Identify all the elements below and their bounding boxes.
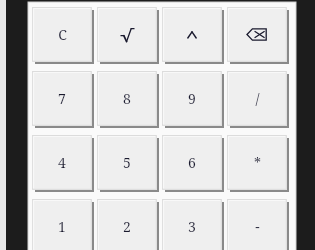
staticText: C xyxy=(58,25,67,44)
button[interactable]: Minus xyxy=(227,199,289,250)
staticText: 5 xyxy=(123,153,131,172)
button[interactable]: 3 xyxy=(162,199,224,250)
button[interactable]: 9 xyxy=(162,71,224,128)
button[interactable]: 6 xyxy=(162,135,224,192)
button[interactable]: Clear xyxy=(32,7,94,64)
staticText: 3 xyxy=(188,217,196,236)
staticText: / xyxy=(255,89,260,108)
button[interactable]: Power xyxy=(162,7,224,64)
staticText: 6 xyxy=(188,153,196,172)
button[interactable]: Divide xyxy=(227,71,289,128)
button[interactable]: 2 xyxy=(97,199,159,250)
button[interactable]: Backspace xyxy=(227,7,289,64)
button[interactable]: 5 xyxy=(97,135,159,192)
button[interactable]: 1 xyxy=(32,199,94,250)
button[interactable]: 7 xyxy=(32,71,94,128)
staticText: - xyxy=(255,217,260,236)
button[interactable]: Square root xyxy=(97,7,159,64)
button[interactable]: 4 xyxy=(32,135,94,192)
button[interactable]: 8 xyxy=(97,71,159,128)
staticText: 1 xyxy=(58,217,66,236)
button[interactable]: Multiply xyxy=(227,135,289,192)
staticText: 8 xyxy=(123,89,131,108)
staticText: 9 xyxy=(188,89,196,108)
staticText: * xyxy=(254,153,261,172)
staticText: 4 xyxy=(58,153,66,172)
staticText: 7 xyxy=(58,89,66,108)
staticText: 2 xyxy=(123,217,131,236)
